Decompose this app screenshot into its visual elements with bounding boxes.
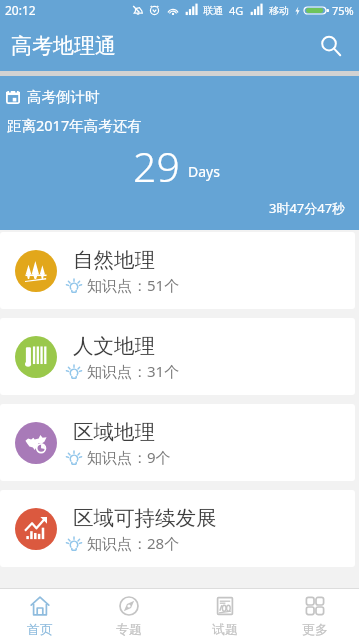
staticText: 高考倒计时 bbox=[27, 88, 100, 106]
staticText: 75% bbox=[332, 3, 354, 18]
staticText: 20:12 bbox=[5, 2, 36, 18]
staticText: 3时47分47秒 bbox=[269, 199, 346, 217]
staticText: 4G bbox=[229, 3, 244, 18]
button[interactable]: 试题 bbox=[178, 589, 271, 640]
staticText: 区域可持续发展 bbox=[73, 505, 217, 531]
button[interactable]: 高考倒计时 bbox=[0, 76, 359, 230]
staticText: 移动 bbox=[269, 4, 289, 17]
button[interactable]: 更多 bbox=[271, 589, 359, 640]
staticText: 更多 bbox=[302, 621, 328, 637]
staticText: 首页 bbox=[27, 621, 53, 637]
staticText: 29 bbox=[133, 138, 180, 194]
button[interactable]: Search bbox=[314, 29, 348, 63]
button[interactable]: 自然地理 bbox=[0, 232, 355, 309]
button[interactable]: 专题 bbox=[80, 589, 178, 640]
staticText: 人文地理 bbox=[73, 333, 155, 359]
staticText: 知识点：31个 bbox=[87, 361, 180, 381]
staticText: 自然地理 bbox=[73, 247, 155, 273]
staticText: 知识点：51个 bbox=[87, 275, 180, 295]
staticText: 试题 bbox=[212, 621, 238, 637]
staticText: 距离2017年高考还有 bbox=[7, 115, 142, 135]
button[interactable]: 首页 bbox=[0, 589, 80, 640]
button[interactable]: 区域地理 bbox=[0, 404, 355, 481]
button[interactable]: 区域可持续发展 bbox=[0, 490, 355, 567]
staticText: 区域地理 bbox=[73, 419, 155, 445]
staticText: 专题 bbox=[116, 621, 142, 637]
staticText: 知识点：28个 bbox=[87, 533, 180, 553]
staticText: 知识点：9个 bbox=[87, 447, 171, 467]
staticText: 高考地理通 bbox=[11, 33, 116, 59]
staticText: Days bbox=[188, 162, 220, 181]
button[interactable]: 人文地理 bbox=[0, 318, 355, 395]
staticText: 联通 bbox=[203, 4, 223, 17]
